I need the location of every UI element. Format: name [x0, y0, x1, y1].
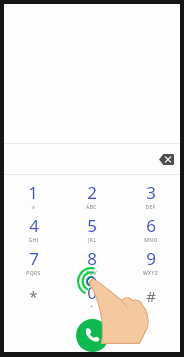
staticText: PQRS	[26, 270, 41, 277]
staticText: 5	[87, 214, 97, 237]
staticText: JKL	[88, 237, 97, 244]
button[interactable]: 9	[121, 245, 180, 279]
staticText: 9	[146, 247, 156, 270]
staticText: 7	[29, 247, 39, 270]
staticText: MNO	[144, 237, 158, 244]
staticText: 0	[87, 281, 97, 304]
button[interactable]: 1	[4, 179, 62, 212]
button[interactable]: *	[4, 279, 62, 313]
staticText: TUV	[86, 270, 97, 277]
staticText: 8	[87, 247, 97, 270]
staticText: ABC	[86, 204, 97, 211]
button[interactable]: 2	[62, 179, 121, 212]
staticText: WXYZ	[143, 270, 158, 277]
staticText: ∞	[31, 204, 36, 210]
button[interactable]: 8	[62, 245, 121, 279]
button[interactable]: 4	[4, 212, 62, 245]
button[interactable]: 7	[4, 245, 62, 279]
staticText: 2	[87, 181, 97, 204]
staticText: GHI	[28, 237, 39, 244]
staticText: DEF	[145, 204, 156, 211]
button[interactable]: Backspace	[156, 151, 176, 167]
staticText: *	[29, 286, 38, 306]
button[interactable]: 0	[62, 279, 121, 313]
staticText: #	[146, 286, 156, 306]
staticText: +	[90, 304, 94, 311]
button[interactable]: 3	[121, 179, 180, 212]
staticText: 6	[146, 214, 156, 237]
staticText: 1	[28, 181, 38, 204]
button[interactable]: 5	[62, 212, 121, 245]
button[interactable]: #	[121, 279, 180, 313]
staticText: 3	[146, 181, 156, 204]
button[interactable]: Call	[76, 319, 109, 352]
button[interactable]: 6	[121, 212, 180, 245]
staticText: 4	[29, 214, 39, 237]
